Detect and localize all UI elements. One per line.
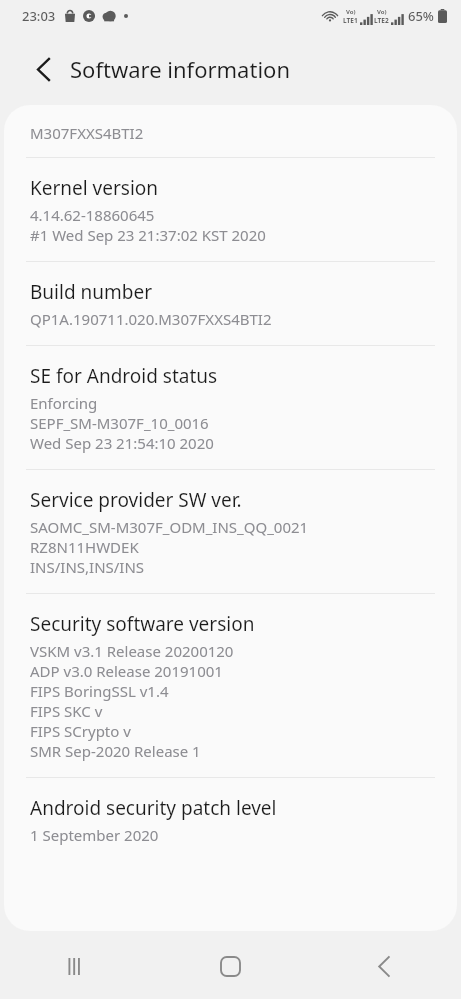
staticText: FIPS SKC v <box>30 701 103 721</box>
staticText: M307FXXS4BTI2 <box>30 123 144 143</box>
staticText: #1 Wed Sep 23 21:37:02 KST 2020 <box>30 225 266 245</box>
button[interactable]: Security software version <box>4 594 457 777</box>
staticText: 23:03 <box>22 7 56 25</box>
staticText: 1 September 2020 <box>30 825 159 845</box>
staticText: Vo) <box>346 8 356 16</box>
staticText: Wed Sep 23 21:54:10 2020 <box>30 433 214 453</box>
staticText: Android security patch level <box>30 795 277 821</box>
button[interactable]: SE for Android status <box>4 346 457 469</box>
button[interactable]: Kernel version <box>4 158 457 261</box>
staticText: LTE1 <box>343 16 358 25</box>
button[interactable]: Back <box>307 933 461 999</box>
staticText: SMR Sep-2020 Release 1 <box>30 741 201 761</box>
staticText: Kernel version <box>30 175 159 201</box>
staticText: Service provider SW ver. <box>30 487 242 513</box>
staticText: Enforcing <box>30 393 98 413</box>
staticText: RZ8N11HWDEK <box>30 537 139 557</box>
button[interactable]: Service provider SW ver. <box>4 470 457 593</box>
staticText: SE for Android status <box>30 363 218 389</box>
staticText: SEPF_SM-M307F_10_0016 <box>30 413 209 433</box>
staticText: 4.14.62-18860645 <box>30 205 155 225</box>
staticText: LTE2 <box>374 16 389 25</box>
button[interactable]: Build number <box>4 262 457 345</box>
button[interactable]: Recent apps <box>0 933 153 999</box>
staticText: Software information <box>70 54 290 84</box>
staticText: Build number <box>30 279 153 305</box>
staticText: 65% <box>408 7 434 25</box>
staticText: Security software version <box>30 611 255 637</box>
staticText: Vo) <box>377 8 387 16</box>
staticText: VSKM v3.1 Release 20200120 <box>30 641 234 661</box>
staticText: FIPS BoringSSL v1.4 <box>30 681 169 701</box>
staticText: ADP v3.0 Release 20191001 <box>30 661 223 681</box>
staticText: QP1A.190711.020.M307FXXS4BTI2 <box>30 309 272 329</box>
button[interactable]: Home <box>153 933 307 999</box>
staticText: FIPS SCrypto v <box>30 721 131 741</box>
staticText: SAOMC_SM-M307F_ODM_INS_QQ_0021 <box>30 517 309 537</box>
staticText: INS/INS,INS/INS <box>30 557 145 577</box>
button[interactable]: Android security patch level <box>4 778 457 861</box>
button[interactable]: Baseband version <box>4 105 457 157</box>
button[interactable]: Back <box>26 52 60 86</box>
